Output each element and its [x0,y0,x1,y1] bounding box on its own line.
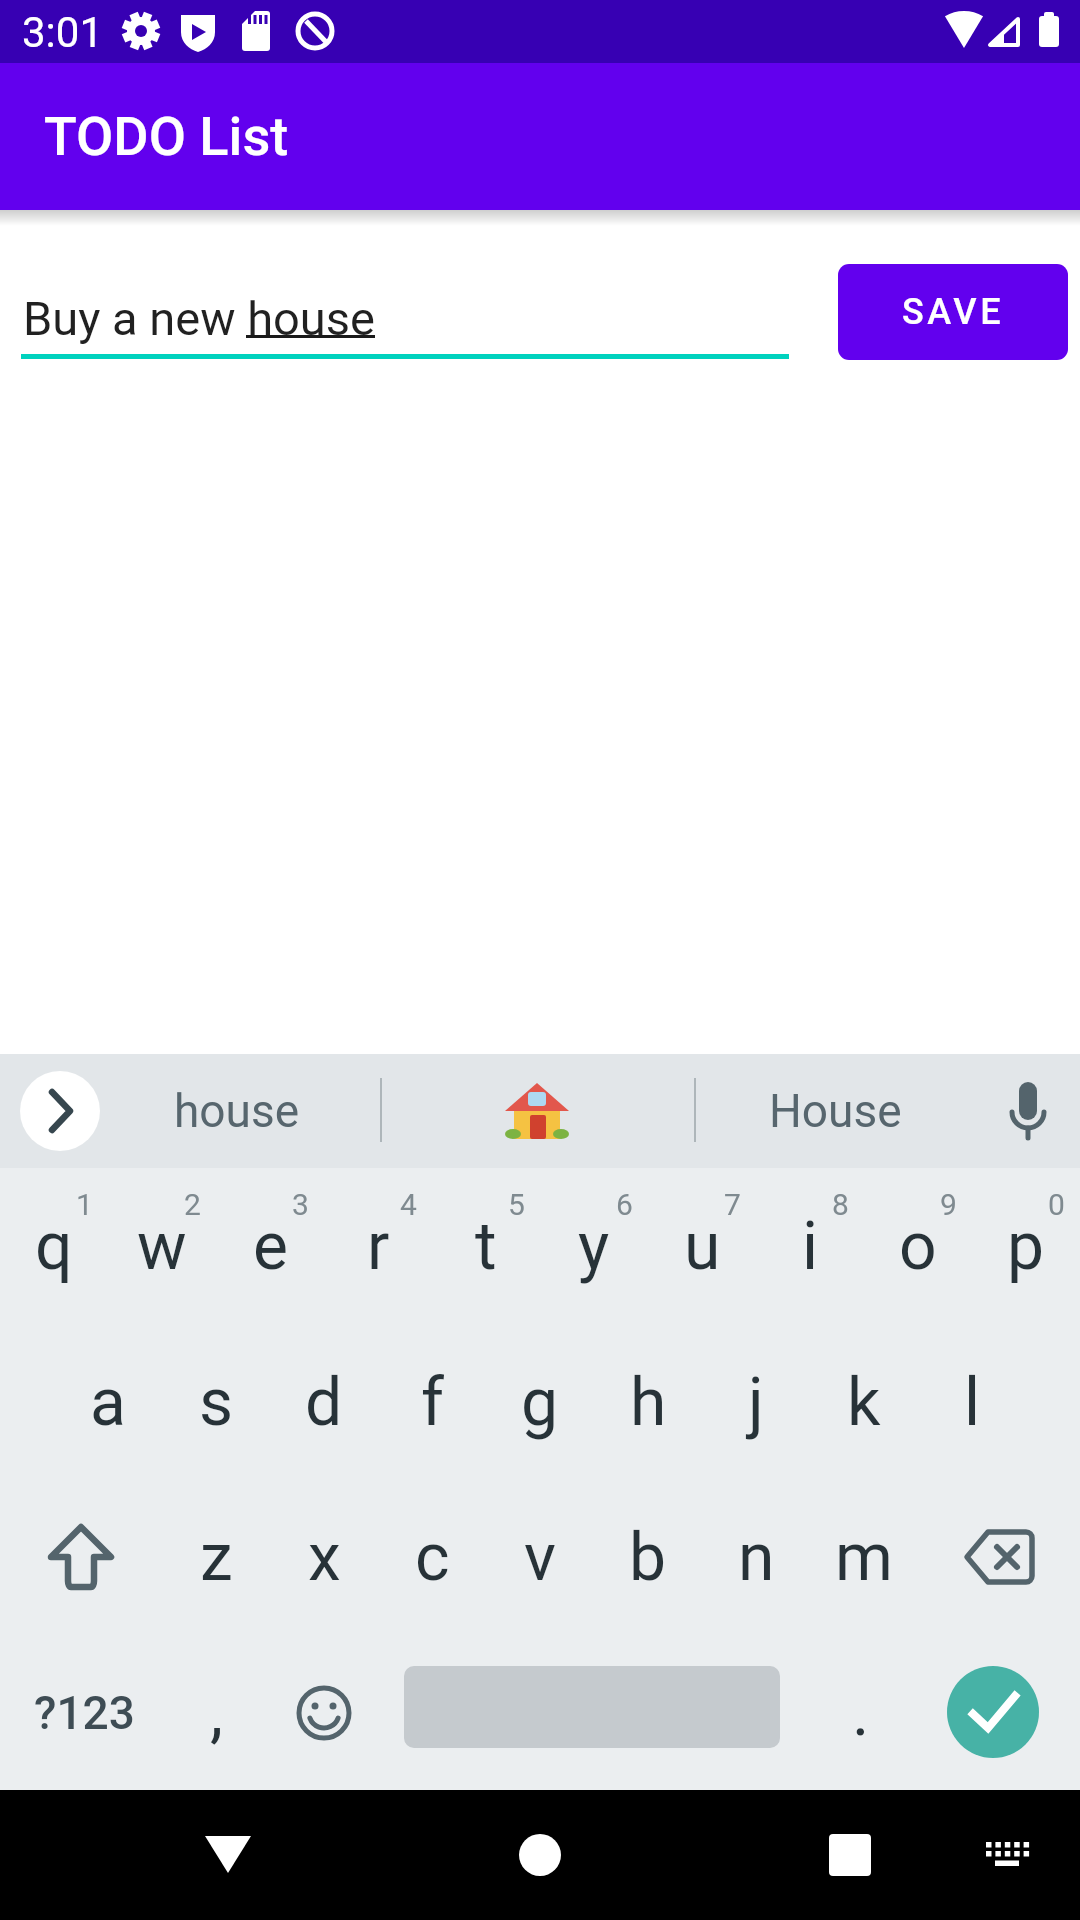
button[interactable] [918,1479,1080,1635]
button[interactable]: a [54,1324,162,1480]
staticText: v [524,1519,556,1596]
staticText: z [200,1519,233,1596]
staticText: t [475,1208,497,1285]
staticText: w [137,1208,187,1285]
button[interactable] [800,1805,900,1905]
staticText: 5 [508,1187,525,1222]
staticText: ?123 [34,1686,135,1740]
button[interactable]: c [378,1479,486,1635]
staticText: x [308,1519,341,1596]
button[interactable]: i [756,1168,864,1324]
button[interactable]: x [270,1479,378,1635]
staticText: TODO List [44,105,289,168]
button[interactable]: t [432,1168,540,1324]
button[interactable]: q [0,1168,108,1324]
button[interactable]: o [864,1168,972,1324]
button[interactable]: f [378,1324,486,1480]
button[interactable]: v [486,1479,594,1635]
button[interactable] [0,1479,162,1635]
staticText: y [578,1208,610,1285]
button[interactable] [988,1076,1068,1146]
button[interactable]: h [594,1324,702,1480]
staticText: b [629,1519,667,1596]
button[interactable]: SAVE [838,264,1068,360]
staticText: 2 [184,1187,201,1222]
staticText: k [847,1364,881,1441]
button[interactable] [947,1666,1039,1758]
staticText: f [421,1364,444,1441]
staticText: 9 [940,1187,957,1222]
button[interactable]: Buy a new house [23,291,783,353]
staticText: , [210,1674,223,1751]
staticText: 0 [1048,1187,1065,1222]
staticText: o [899,1208,937,1285]
staticText: r [367,1208,390,1285]
staticText: house [174,1084,300,1138]
button[interactable]: l [918,1324,1026,1480]
button[interactable]: y [540,1168,648,1324]
button[interactable]: j [702,1324,810,1480]
staticText: e [253,1208,288,1285]
button[interactable]: . [807,1635,915,1790]
staticText: 3 [292,1187,309,1222]
button[interactable]: k [810,1324,918,1480]
button[interactable] [477,1054,597,1168]
staticText: s [199,1364,234,1441]
button[interactable]: w [108,1168,216,1324]
staticText: d [305,1364,343,1441]
button[interactable]: u [648,1168,756,1324]
staticText: u [684,1208,721,1285]
staticText: Buy a new house [23,291,375,346]
staticText: m [835,1519,893,1596]
staticText: 6 [616,1187,633,1222]
button[interactable] [490,1805,590,1905]
button[interactable]: r [324,1168,432,1324]
staticText: l [964,1364,981,1441]
button[interactable]: z [162,1479,270,1635]
button[interactable]: g [486,1324,594,1480]
staticText: . [852,1674,870,1751]
staticText: 7 [724,1187,741,1222]
staticText: n [738,1519,775,1596]
button[interactable]: d [270,1324,378,1480]
button[interactable]: , [162,1635,270,1790]
staticText: 4 [400,1187,417,1222]
staticText: c [415,1519,450,1596]
button[interactable]: s [162,1324,270,1480]
button[interactable]: ?123 [0,1635,168,1790]
button[interactable]: b [594,1479,702,1635]
staticText: 8 [832,1187,849,1222]
staticText: g [521,1364,559,1441]
staticText: q [35,1208,73,1285]
button[interactable]: House [735,1054,935,1168]
button[interactable]: house [137,1054,337,1168]
staticText: 3:01 [22,8,103,54]
staticText: a [90,1364,126,1441]
staticText: 1 [76,1187,93,1222]
staticText: p [1007,1208,1045,1285]
button[interactable] [178,1805,278,1905]
button[interactable]: n [702,1479,810,1635]
button[interactable] [967,1815,1047,1895]
staticText: j [748,1364,764,1441]
button[interactable]: p [972,1168,1080,1324]
button[interactable]: e [216,1168,324,1324]
button[interactable] [20,1071,100,1151]
staticText: SAVE [902,291,1005,333]
button[interactable] [270,1635,378,1790]
staticText: h [630,1364,667,1441]
staticText: House [769,1084,902,1138]
staticText: i [802,1208,819,1285]
button[interactable]: m [810,1479,918,1635]
